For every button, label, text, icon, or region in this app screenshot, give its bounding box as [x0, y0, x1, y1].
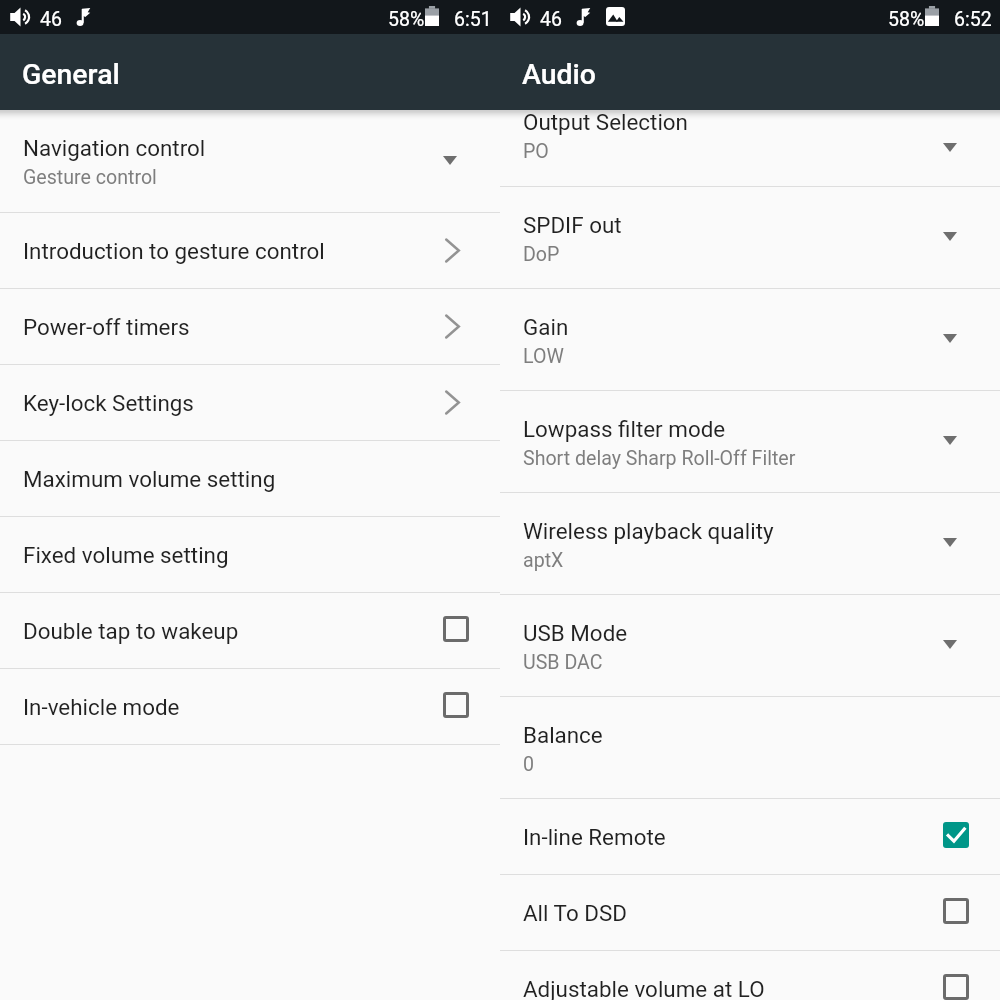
- other: Checkbox checked: [943, 822, 969, 848]
- other: Volume: [509, 7, 533, 27]
- staticText: Balance: [523, 722, 603, 748]
- staticText: Fixed volume setting: [23, 542, 229, 568]
- staticText: Power-off timers: [23, 314, 190, 340]
- other: Expand: [943, 436, 957, 445]
- staticText: 6:52: [954, 8, 992, 31]
- other: Checkbox unchecked: [443, 616, 469, 642]
- button[interactable]: USB Mode: [500, 595, 1000, 696]
- other: Battery 58 percent: [425, 6, 439, 26]
- staticText: 46: [540, 8, 562, 31]
- button[interactable]: Wireless playback quality: [500, 493, 1000, 594]
- button[interactable]: In-vehicle mode: [0, 669, 500, 744]
- staticText: Wireless playback quality: [523, 518, 774, 544]
- button[interactable]: Gain: [500, 289, 1000, 390]
- button[interactable]: Double tap to wakeup: [0, 593, 500, 668]
- staticText: USB Mode: [523, 620, 628, 646]
- staticText: Key-lock Settings: [23, 390, 194, 416]
- button[interactable]: Navigation control: [0, 110, 500, 212]
- button[interactable]: Lowpass filter mode: [500, 391, 1000, 492]
- staticText: LOW: [523, 345, 564, 368]
- staticText: USB DAC: [523, 651, 603, 674]
- button[interactable]: All To DSD: [500, 875, 1000, 950]
- staticText: In-vehicle mode: [23, 694, 180, 720]
- staticText: 0: [523, 753, 535, 776]
- other: Checkbox unchecked: [943, 974, 969, 1000]
- button[interactable]: SPDIF out: [500, 187, 1000, 288]
- staticText: PO: [523, 140, 549, 163]
- button[interactable]: Output Selection: [500, 110, 1000, 186]
- staticText: Gesture control: [23, 166, 157, 189]
- staticText: Introduction to gesture control: [23, 238, 325, 264]
- button[interactable]: Key-lock Settings: [0, 365, 500, 440]
- staticText: Short delay Sharp Roll-Off Filter: [523, 447, 796, 470]
- other: Open: [445, 239, 460, 262]
- staticText: Adjustable volume at LO: [523, 976, 765, 1000]
- other: Screenshot captured: [606, 7, 625, 26]
- staticText: All To DSD: [523, 900, 627, 926]
- staticText: Lowpass filter mode: [523, 416, 726, 442]
- staticText: 46: [40, 8, 62, 31]
- staticText: Output Selection: [523, 109, 688, 135]
- other: Music playing: [76, 8, 91, 26]
- other: Open: [445, 315, 460, 338]
- other: Volume: [9, 7, 33, 27]
- staticText: Navigation control: [23, 135, 206, 161]
- staticText: aptX: [523, 549, 564, 572]
- staticText: General: [22, 58, 120, 91]
- other: Expand: [943, 640, 957, 649]
- button[interactable]: Maximum volume setting: [0, 441, 500, 516]
- button[interactable]: Adjustable volume at LO: [500, 951, 1000, 1000]
- staticText: 58%: [888, 8, 925, 31]
- staticText: 58%: [388, 8, 425, 31]
- other: Checkbox unchecked: [443, 692, 469, 718]
- other: Open: [445, 391, 460, 414]
- other: Music playing: [576, 8, 591, 26]
- staticText: Audio: [522, 58, 596, 91]
- other: Checkbox unchecked: [943, 898, 969, 924]
- button[interactable]: Fixed volume setting: [0, 517, 500, 592]
- other: Expand: [443, 156, 457, 165]
- staticText: 6:51: [454, 8, 492, 31]
- other: Expand: [943, 334, 957, 343]
- button[interactable]: Power-off timers: [0, 289, 500, 364]
- other: Expand: [943, 538, 957, 547]
- button[interactable]: Introduction to gesture control: [0, 213, 500, 288]
- other: Expand: [943, 143, 957, 152]
- other: Expand: [943, 232, 957, 241]
- staticText: Double tap to wakeup: [23, 618, 239, 644]
- other: Battery 58 percent: [925, 6, 939, 26]
- button[interactable]: In-line Remote: [500, 799, 1000, 874]
- staticText: DoP: [523, 243, 560, 266]
- staticText: Gain: [523, 314, 569, 340]
- staticText: SPDIF out: [523, 212, 622, 238]
- staticText: In-line Remote: [523, 824, 666, 850]
- staticText: Maximum volume setting: [23, 466, 276, 492]
- button[interactable]: Balance: [500, 697, 1000, 798]
